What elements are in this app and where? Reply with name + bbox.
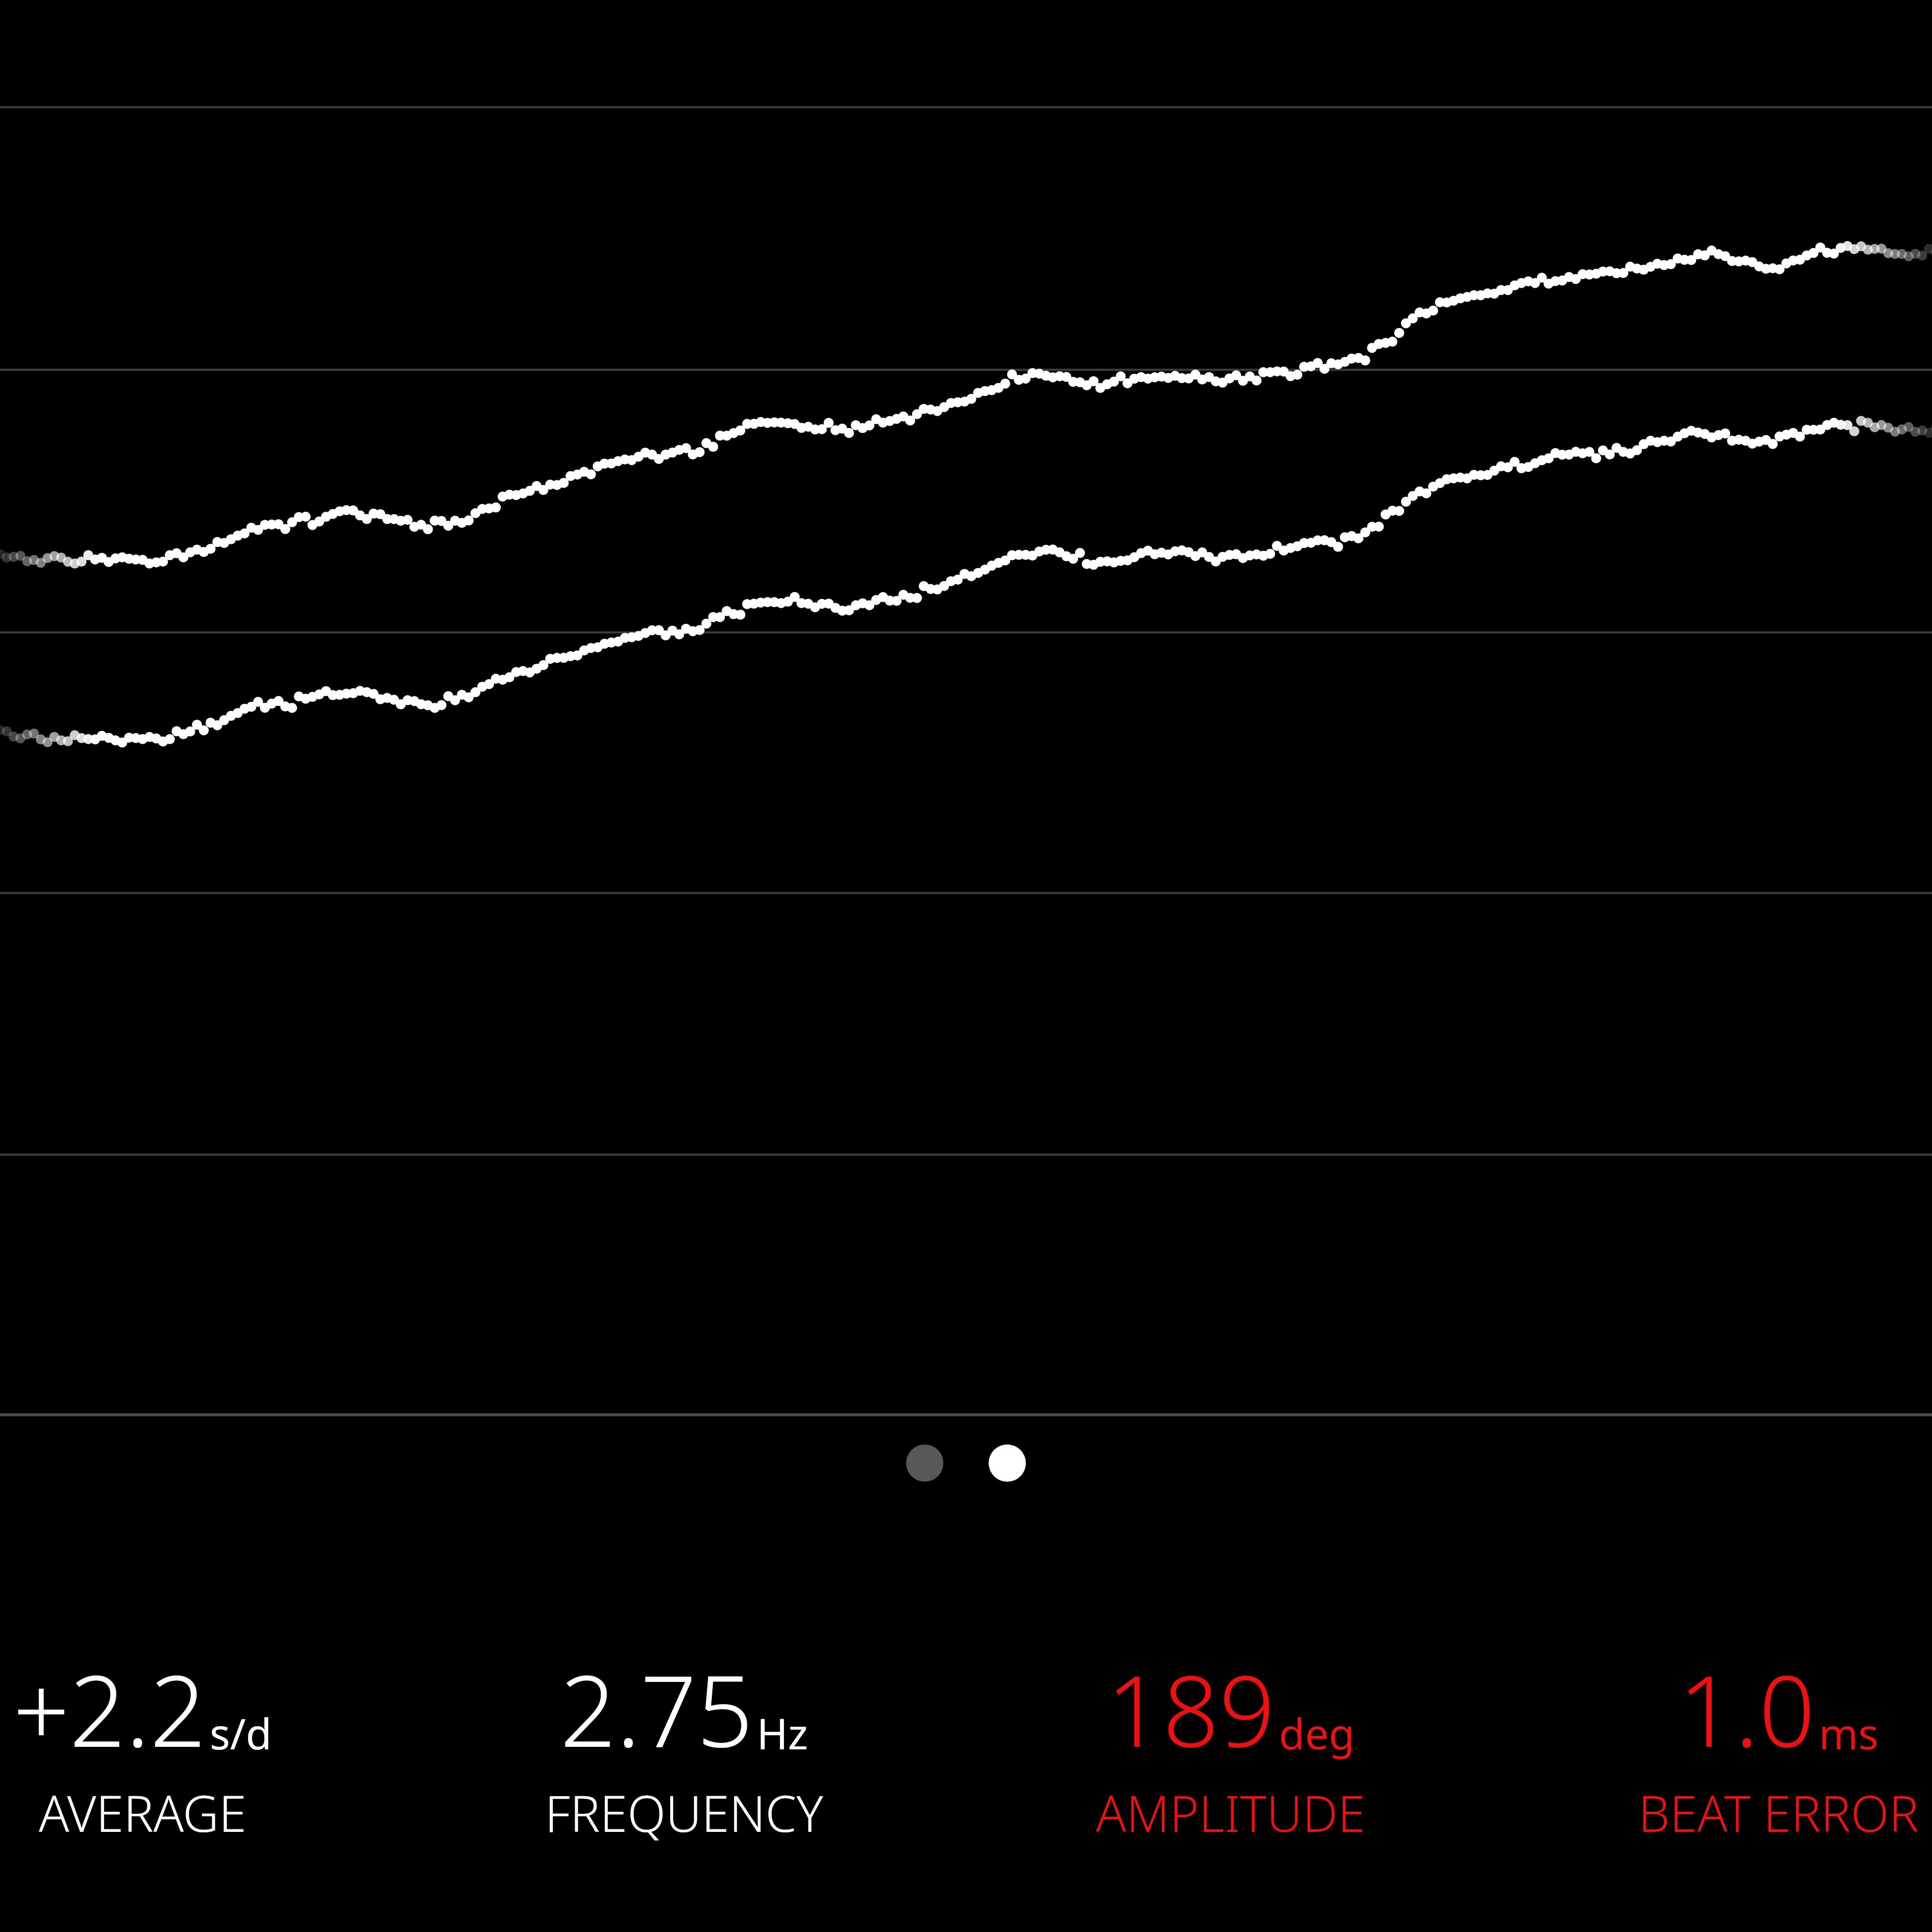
- staticText: deg: [1279, 1704, 1355, 1761]
- staticText: Hz: [757, 1704, 808, 1761]
- button[interactable]: +2.2: [13, 1641, 272, 1846]
- staticText: 189: [1106, 1641, 1275, 1776]
- button[interactable]: Rate trace graph: [0, 0, 1932, 1424]
- button[interactable]: 189: [1096, 1641, 1365, 1846]
- staticText: +2.2: [13, 1641, 206, 1776]
- staticText: AMPLITUDE: [1096, 1779, 1365, 1846]
- staticText: s/d: [210, 1704, 272, 1761]
- button[interactable]: 1.0: [1638, 1641, 1919, 1846]
- staticText: 2.75: [560, 1641, 753, 1776]
- button[interactable]: 2.75: [545, 1641, 823, 1846]
- staticText: 1.0: [1678, 1641, 1815, 1776]
- staticText: FREQUENCY: [545, 1779, 823, 1846]
- staticText: AVERAGE: [39, 1779, 247, 1846]
- staticText: BEAT ERROR: [1638, 1779, 1919, 1846]
- other: Page 2 of 2: [0, 1440, 1932, 1486]
- staticText: ms: [1819, 1704, 1879, 1761]
